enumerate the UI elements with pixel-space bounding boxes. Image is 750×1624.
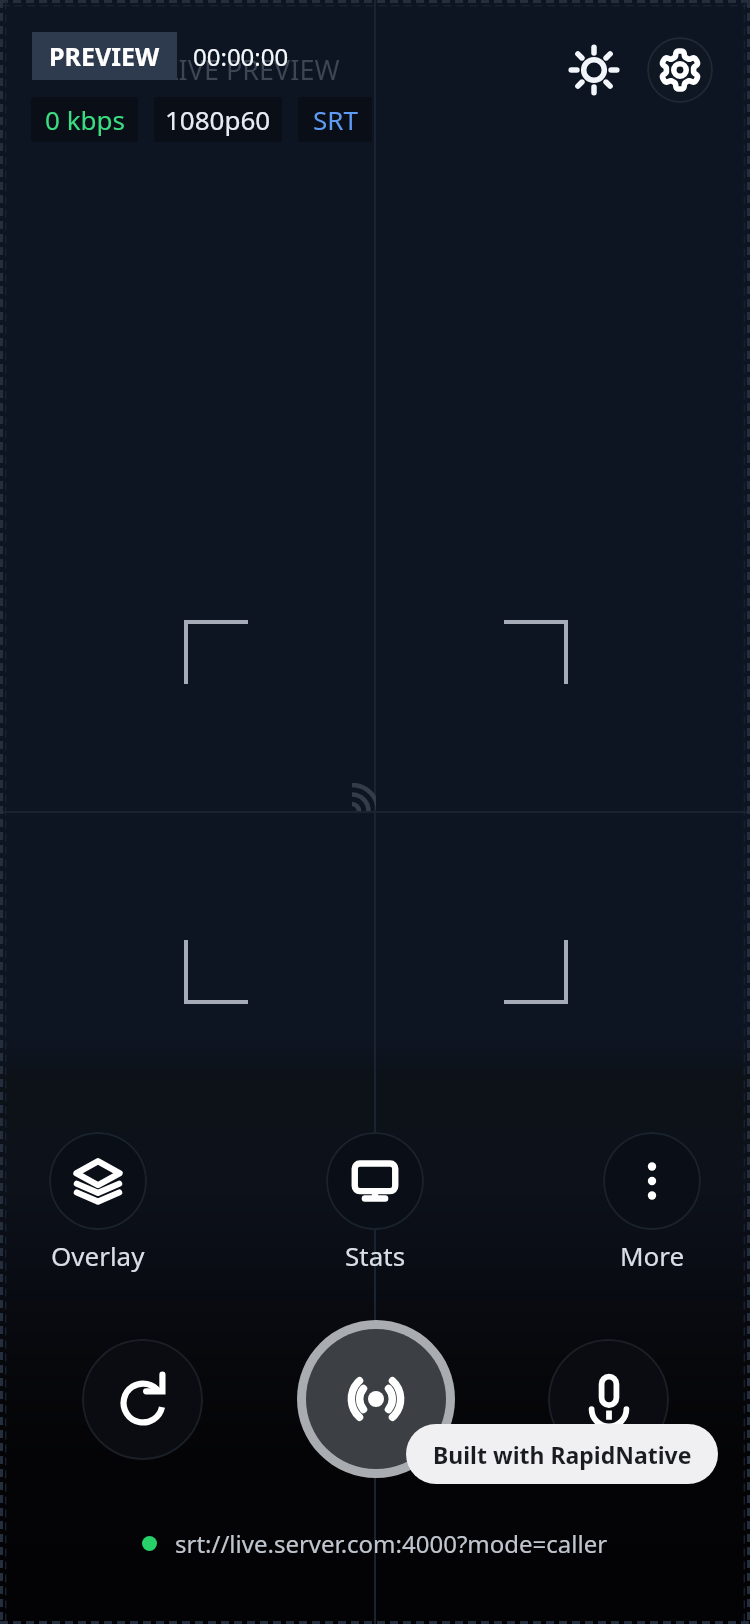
button[interactable]: PREVIEW [32,32,177,80]
staticText: SRT [313,102,358,137]
staticText: srt://live.server.com:4000?mode=caller [175,1527,608,1560]
staticText: PREVIEW [49,39,160,73]
button[interactable]: SRT [298,97,372,142]
button[interactable]: Switch camera [82,1339,203,1460]
button[interactable]: Overlay [49,1132,147,1273]
staticText: CAM 1 // LIVE PREVIEW [49,51,340,88]
button[interactable]: Microphone [548,1339,669,1460]
button[interactable]: 0 kbps [31,97,138,142]
staticText: More [620,1238,685,1273]
staticText: 00:00:00 [193,40,289,73]
staticText: 1080p60 [165,102,271,137]
button[interactable]: Brightness [561,37,627,103]
staticText: 0 kbps [45,102,125,137]
button[interactable]: Settings [647,37,713,103]
button[interactable]: Go live [297,1320,455,1478]
staticText: Built with RapidNative [433,1439,692,1470]
staticText: Overlay [51,1238,145,1273]
button[interactable]: More [603,1132,701,1273]
button[interactable]: Stats [326,1132,424,1273]
button[interactable]: Built with RapidNative [406,1424,718,1484]
staticText: Stats [345,1238,406,1273]
button[interactable]: 1080p60 [154,97,282,142]
